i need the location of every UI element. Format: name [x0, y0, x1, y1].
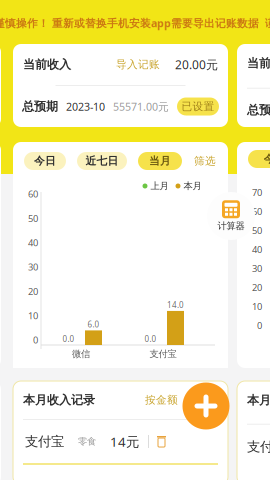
staticText: 上月 — [150, 180, 168, 192]
staticText: 20 — [28, 285, 38, 297]
staticText: 14.0 — [167, 300, 184, 310]
staticText: 当月 — [149, 154, 171, 167]
staticText: 谨慎操作！ 重新或替换手机安装app需要导出记账数据 谨慎操作！ 重新或 — [0, 16, 270, 30]
staticText: 60 — [252, 205, 262, 218]
staticText: 导入记账 — [116, 58, 160, 71]
button[interactable]: Calculator — [207, 192, 255, 240]
staticText: 30 — [252, 262, 262, 275]
staticText: 当前收入 — [23, 57, 71, 72]
staticText: 50 — [252, 224, 262, 237]
staticText: 0 — [257, 319, 262, 332]
staticText: 支付宝 — [149, 348, 176, 360]
button[interactable]: 已设置 — [177, 97, 219, 115]
staticText: 30 — [28, 261, 38, 273]
button[interactable]: Delete — [157, 436, 166, 447]
staticText: 当前支 — [247, 56, 270, 71]
staticText: 14元 — [110, 433, 139, 450]
button[interactable]: 筛选 — [193, 153, 217, 169]
staticText: 6.0 — [87, 319, 99, 330]
staticText: 0.0 — [62, 334, 74, 344]
staticText: 近七日 — [85, 154, 118, 167]
staticText: 20.00元 — [175, 56, 218, 72]
staticText: 40 — [252, 243, 262, 256]
button[interactable]: 按金额 — [145, 393, 178, 406]
staticText: 55571.00元 — [113, 99, 169, 114]
staticText: 今日 — [34, 154, 56, 167]
button[interactable]: 近七日 — [77, 152, 127, 170]
staticText: 40 — [28, 236, 38, 249]
staticText: 总预算 — [247, 103, 270, 117]
staticText: 按金额 — [145, 393, 178, 406]
staticText: 支付宝 — [25, 433, 64, 450]
staticText: 计算器 — [217, 220, 244, 232]
button[interactable]: Add record — [182, 382, 229, 429]
button[interactable]: 导入记账 — [116, 58, 160, 71]
staticText: 支付 — [247, 439, 270, 455]
staticText: 70 — [252, 186, 262, 199]
staticText: 微信 — [72, 348, 90, 360]
staticText: 总预期 — [22, 99, 58, 114]
staticText: 0.0 — [144, 334, 156, 344]
button[interactable]: 今日 — [24, 152, 66, 170]
staticText: 10 — [28, 309, 38, 322]
staticText: 筛选 — [194, 154, 216, 167]
staticText: 已设置 — [181, 100, 214, 113]
staticText: 10 — [252, 300, 262, 313]
button[interactable]: 当月 — [138, 152, 182, 170]
staticText: 本月 — [183, 180, 201, 192]
staticText: 50 — [28, 212, 38, 224]
staticText: 20 — [252, 281, 262, 294]
staticText: 2023-10 — [66, 99, 105, 114]
staticText: 本月收入记录 — [23, 393, 95, 407]
staticText: 本月 — [247, 393, 270, 408]
staticText: 零食 — [78, 436, 96, 447]
staticText: 60 — [28, 188, 38, 200]
staticText: 今 — [263, 152, 270, 165]
staticText: 0 — [33, 334, 38, 346]
